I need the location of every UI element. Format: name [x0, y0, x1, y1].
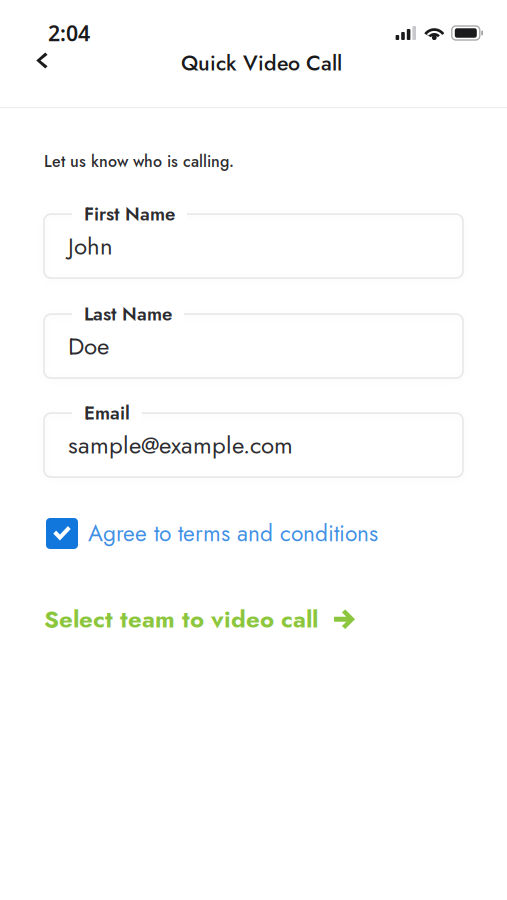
button[interactable]: Agree to terms and conditions	[44, 517, 463, 550]
staticText: sample@example.com	[68, 428, 293, 462]
staticText: Select team to video call	[44, 602, 318, 637]
staticText: Quick Video Call	[181, 48, 342, 78]
staticText: Let us know who is calling.	[44, 150, 234, 173]
staticText: Agree to terms and conditions	[88, 517, 378, 550]
button[interactable]: Select team to video call	[44, 602, 463, 637]
staticText: 2:04	[48, 19, 90, 47]
button[interactable]: Back	[25, 47, 59, 79]
staticText: John	[68, 229, 113, 263]
staticText: Doe	[68, 329, 109, 363]
staticText: Email	[84, 400, 130, 427]
staticText: First Name	[84, 201, 175, 228]
staticText: Last Name	[84, 301, 172, 328]
